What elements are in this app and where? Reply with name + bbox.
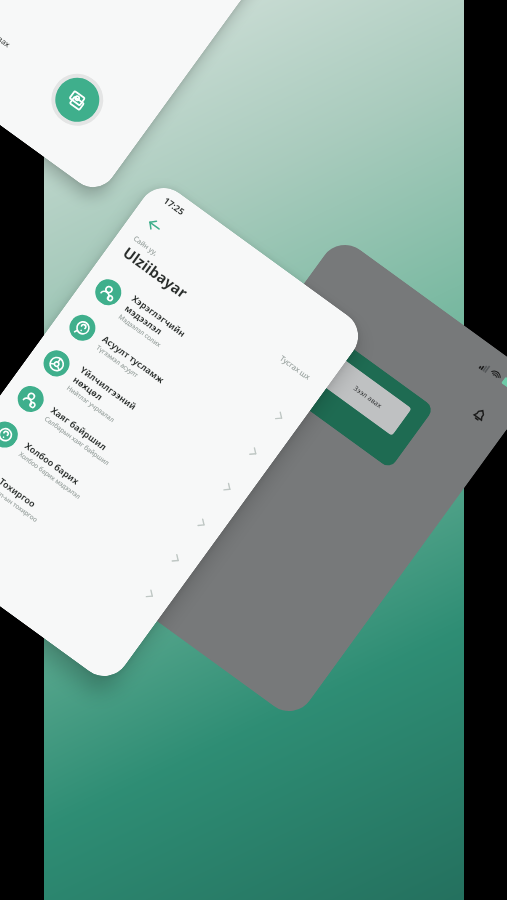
staticText: Апп-ын тохиргоо — [0, 485, 40, 524]
staticText: Мэдээлэл солих — [117, 312, 163, 349]
staticText: Холбоо барих мэдээлэл — [17, 450, 83, 501]
staticText: Хаяг байршил — [49, 404, 110, 453]
staticText: Хэрэглэгчийн мэдээлэл — [123, 292, 189, 349]
staticText: Нийтлэг учраалал — [65, 383, 117, 424]
staticText: Үйлчилгээний нөхцөл — [71, 363, 139, 422]
staticText: Асуулт тусламж — [100, 332, 167, 386]
button[interactable]: Тохиргоо — [0, 436, 180, 625]
staticText: Сайн уу, — [131, 234, 160, 258]
button[interactable]: Холбоо барих — [0, 401, 206, 589]
button[interactable]: Үйлчилгээний нөхцөл — [22, 330, 258, 518]
button[interactable]: Хаяг байршил — [0, 365, 232, 554]
staticText: Салбарын хаяг байршил — [43, 414, 111, 467]
button[interactable]: Add loan — [47, 69, 108, 130]
button[interactable]: Back — [139, 210, 170, 241]
button[interactable]: Тусгах шх — [273, 347, 318, 387]
staticText: Холбоо барих — [23, 439, 82, 487]
staticText: Зээл авах — [351, 384, 384, 411]
button[interactable]: Хэрэглэгчийн мэдээлэл — [73, 258, 310, 447]
staticText: Түгээмэл асуулт — [95, 343, 140, 380]
staticText: Ulziibayar — [119, 242, 192, 302]
button[interactable]: Зээл авах — [293, 337, 435, 469]
button[interactable]: Асуулт тусламж — [48, 294, 284, 482]
staticText: Тусгах шх — [278, 353, 312, 382]
button[interactable]: Notifications — [464, 399, 495, 430]
staticText: 17:25 — [161, 194, 188, 218]
staticText: Тохиргоо — [0, 475, 39, 510]
staticText: ...п байхгүй байна. Зээл авах — [0, 0, 13, 49]
